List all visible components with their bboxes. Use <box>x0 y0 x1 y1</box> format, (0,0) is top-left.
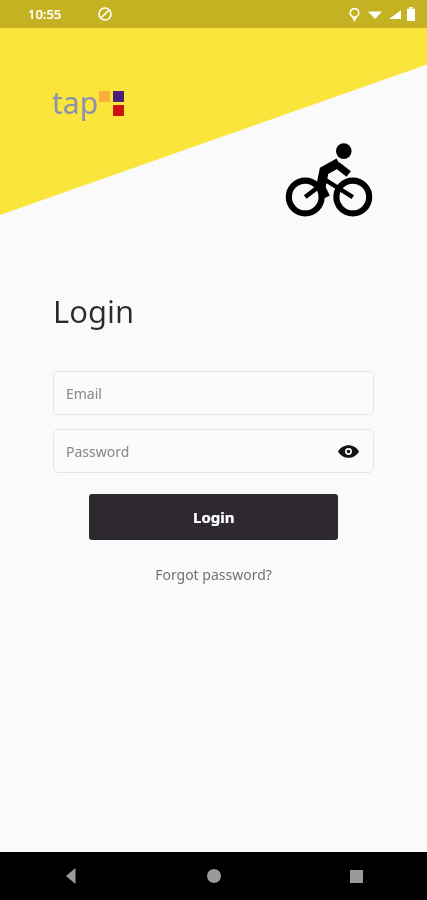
button[interactable]: Back <box>0 852 143 900</box>
button[interactable]: Show password <box>335 438 361 464</box>
staticText: 10:55 <box>28 5 62 23</box>
button[interactable]: Email <box>53 371 374 415</box>
staticText: Password <box>66 442 130 461</box>
staticText: Login <box>193 507 235 527</box>
button[interactable]: Recent apps <box>285 852 427 900</box>
button[interactable]: Forgot password? <box>147 561 280 588</box>
other: Cyclist <box>288 138 370 220</box>
button[interactable]: Login <box>89 494 338 540</box>
button[interactable]: Password <box>53 429 374 473</box>
staticText: Login <box>53 290 135 332</box>
staticText: tap <box>52 82 99 123</box>
staticText: Email <box>66 384 102 403</box>
button[interactable]: Home <box>143 852 285 900</box>
